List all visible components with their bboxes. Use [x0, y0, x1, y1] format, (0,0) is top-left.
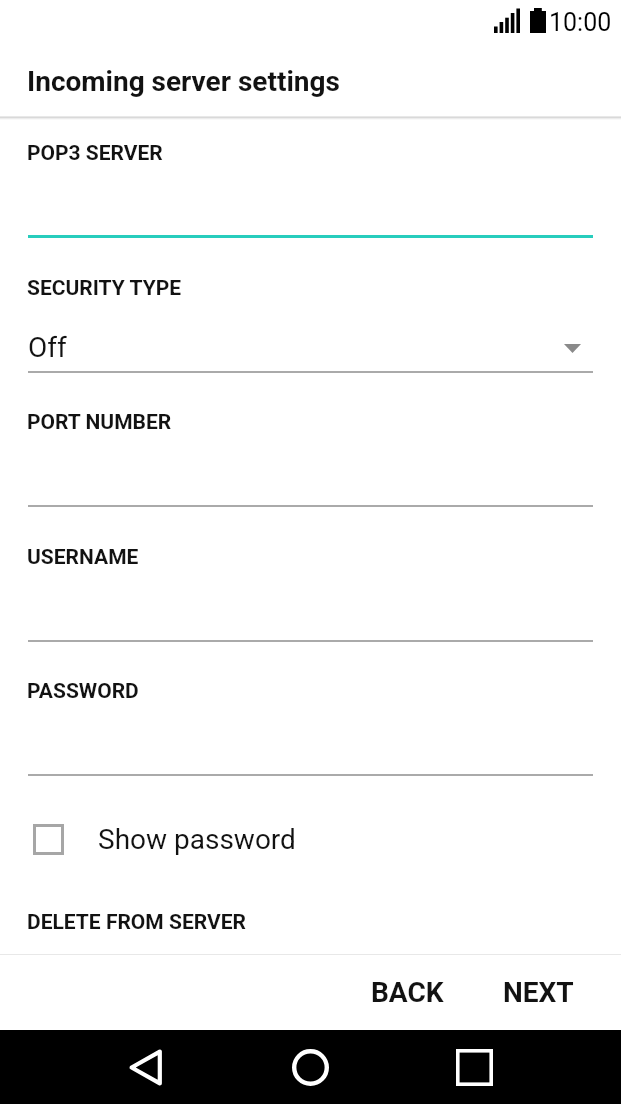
button[interactable]: USERNAME	[28, 522, 593, 640]
staticText: NEXT	[503, 976, 574, 1009]
button[interactable]: SECURITY TYPE	[28, 253, 593, 371]
staticText: Show password	[98, 823, 296, 856]
staticText: Off	[28, 331, 67, 364]
button[interactable]: DELETE FROM SERVER	[28, 888, 593, 950]
staticText: 10:00	[549, 8, 612, 37]
staticText: DELETE FROM SERVER	[27, 910, 246, 935]
staticText: USERNAME	[27, 545, 139, 570]
button[interactable]: Recent apps	[438, 1030, 511, 1104]
button[interactable]: Home	[274, 1030, 347, 1104]
staticText: Incoming server settings	[27, 65, 340, 98]
button[interactable]: PASSWORD	[28, 656, 593, 774]
button[interactable]: PORT NUMBER	[28, 387, 593, 505]
button[interactable]: Back	[110, 1030, 183, 1104]
button[interactable]: BACK	[348, 955, 466, 1030]
button[interactable]: POP3 SERVER	[28, 118, 593, 236]
staticText: BACK	[371, 976, 444, 1009]
button[interactable]: NEXT	[479, 955, 598, 1030]
staticText: POP3 SERVER	[27, 141, 163, 166]
button[interactable]: Show password	[0, 798, 621, 880]
staticText: PORT NUMBER	[27, 410, 172, 435]
staticText: PASSWORD	[27, 679, 139, 704]
staticText: SECURITY TYPE	[27, 276, 181, 301]
